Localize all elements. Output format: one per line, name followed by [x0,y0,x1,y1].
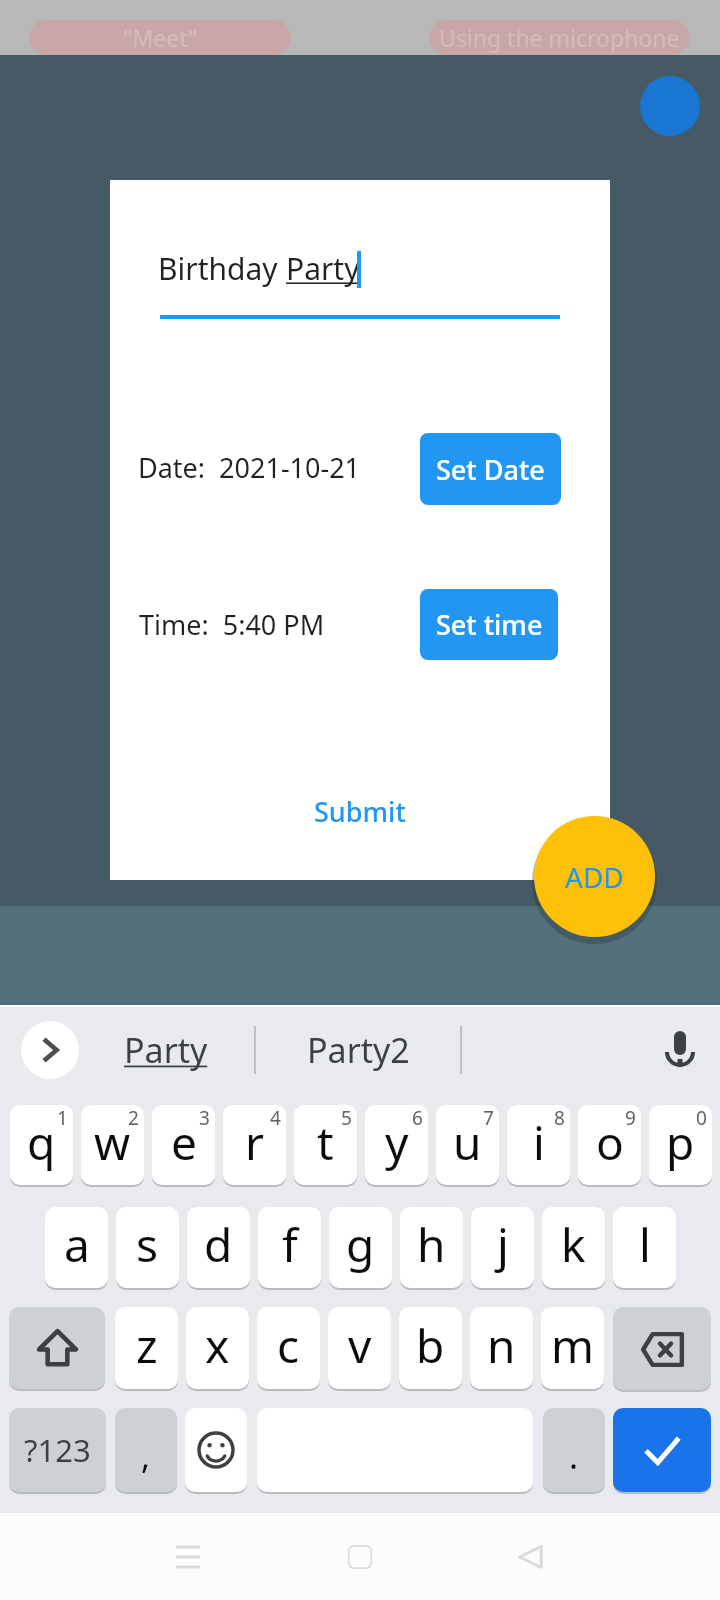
staticText: j [497,1213,509,1276]
button[interactable]: t [294,1105,357,1185]
button[interactable]: e [152,1105,215,1185]
staticText: l [639,1213,651,1276]
staticText: 6 [412,1105,423,1131]
button[interactable]: m [541,1307,604,1389]
button[interactable]: Emoji [185,1408,247,1492]
button[interactable]: Home [320,1513,400,1600]
staticText: f [282,1213,298,1276]
button[interactable]: b [399,1307,462,1389]
staticText: n [487,1314,516,1377]
button[interactable]: Party2 [298,1014,418,1086]
button[interactable]: Set Date [420,433,561,505]
staticText: d [204,1213,233,1276]
staticText: Party [124,1027,208,1073]
button[interactable]: i [507,1105,570,1185]
button[interactable]: a [45,1207,108,1288]
button[interactable]: h [400,1207,463,1288]
staticText: Time: 5:40 PM [139,606,325,643]
button[interactable]: g [329,1207,392,1288]
staticText: Birthday [158,248,286,289]
staticText: ?123 [24,1429,91,1471]
button[interactable]: Shift [9,1307,105,1389]
button[interactable]: p [649,1105,712,1185]
staticText: h [417,1213,446,1276]
button[interactable]: k [542,1207,605,1288]
button[interactable]: Expand [21,1021,79,1079]
button[interactable]: c [257,1307,320,1389]
staticText: w [94,1111,131,1174]
staticText: 8 [554,1105,565,1131]
staticText: , [141,1433,151,1479]
staticText: z [136,1314,158,1377]
staticText: 5 [341,1105,352,1131]
button[interactable]: n [470,1307,533,1389]
button[interactable]: ADD [534,816,655,937]
button[interactable]: f [258,1207,321,1288]
staticText: . [569,1433,579,1479]
staticText: p [666,1111,695,1174]
staticText: ADD [565,858,624,896]
staticText: Date: 2021-10-21 [138,449,361,486]
staticText: 3 [199,1105,210,1131]
staticText: Set time [436,606,543,643]
staticText: t [317,1111,334,1174]
staticText: q [27,1111,56,1174]
staticText: Party2 [307,1027,410,1073]
staticText: m [551,1314,595,1377]
button[interactable]: l [613,1207,676,1288]
button[interactable]: u [436,1105,499,1185]
button[interactable]: Backspace [613,1307,711,1390]
staticText: y [385,1111,409,1174]
staticText: g [346,1213,375,1276]
staticText: b [416,1314,445,1377]
staticText: Party [286,248,360,289]
staticText: Set Date [436,451,545,488]
staticText: c [277,1314,300,1377]
button[interactable]: v [328,1307,391,1389]
staticText: 7 [483,1105,494,1131]
button[interactable]: Recents [148,1513,228,1600]
button[interactable]: z [115,1307,178,1389]
staticText: a [64,1213,90,1276]
staticText: k [561,1213,586,1276]
button[interactable]: w [81,1105,144,1185]
button[interactable]: d [187,1207,250,1288]
button[interactable]: y [365,1105,428,1185]
staticText: e [171,1111,197,1174]
staticText: Using the microphone [439,22,680,53]
button[interactable]: . [543,1408,605,1492]
staticText: i [533,1111,545,1174]
staticText: r [245,1111,264,1174]
button[interactable]: o [578,1105,641,1185]
button[interactable]: Profile [640,76,700,136]
button[interactable]: j [471,1207,534,1288]
staticText: 1 [57,1105,68,1131]
staticText: "Meet" [123,22,198,53]
button[interactable]: ?123 [9,1408,106,1492]
staticText: u [453,1111,482,1174]
staticText: 9 [625,1105,636,1131]
button[interactable]: Set time [420,589,558,660]
button[interactable]: , [115,1408,177,1492]
staticText: 2 [128,1105,139,1131]
button[interactable]: x [186,1307,249,1389]
button[interactable]: s [116,1207,179,1288]
staticText: v [348,1314,372,1377]
button[interactable]: r [223,1105,286,1185]
button[interactable]: Party [103,1014,228,1086]
staticText: 0 [696,1105,707,1131]
button[interactable]: Voice input [652,1020,708,1076]
staticText: o [596,1111,624,1174]
staticText: 4 [270,1105,281,1131]
staticText: Submit [314,793,406,830]
button[interactable]: Enter [613,1408,711,1492]
button[interactable]: Back [490,1513,570,1600]
staticText: s [136,1213,159,1276]
button[interactable]: Submit [300,781,420,841]
button[interactable]: q [10,1105,73,1185]
staticText: x [205,1314,230,1377]
